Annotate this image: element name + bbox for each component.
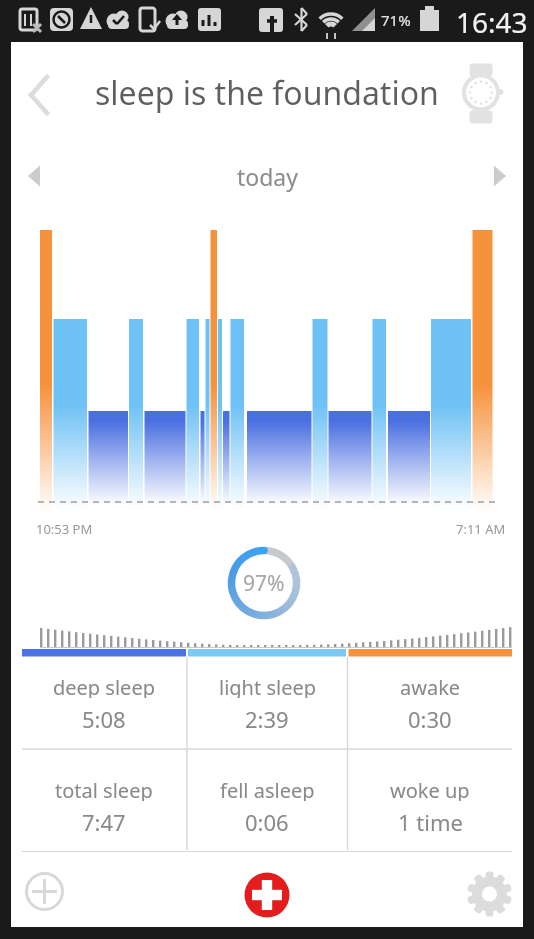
staticText: 0:30	[408, 704, 452, 730]
button[interactable]	[22, 869, 67, 914]
staticText: 7:47	[82, 807, 126, 833]
staticText: 97%	[243, 569, 285, 597]
button[interactable]	[20, 158, 52, 194]
button[interactable]	[23, 658, 185, 749]
staticText: 1 time	[398, 807, 463, 833]
button[interactable]: today	[0, 156, 534, 196]
staticText: 0:06	[245, 807, 289, 833]
staticText: sleep is the foundation	[95, 71, 439, 115]
staticText: 7:11 AM	[456, 520, 506, 538]
button[interactable]	[349, 658, 511, 749]
staticText: total sleep	[55, 777, 153, 801]
staticText: 5:08	[82, 704, 126, 730]
staticText: 16:43	[456, 3, 528, 37]
button[interactable]	[186, 749, 348, 850]
staticText: 71%	[381, 10, 411, 30]
staticText: today	[237, 161, 298, 192]
button[interactable]	[18, 68, 64, 120]
staticText: fell asleep	[220, 777, 315, 801]
staticText: light sleep	[219, 674, 316, 698]
button[interactable]	[456, 62, 510, 122]
staticText: 2:39	[245, 704, 289, 730]
staticText: woke up	[390, 777, 470, 801]
staticText: 10:53 PM	[36, 520, 93, 538]
button[interactable]	[349, 749, 511, 850]
staticText: deep sleep	[53, 674, 155, 698]
button[interactable]	[484, 158, 516, 194]
button[interactable]	[186, 658, 348, 749]
button[interactable]: sleep is the foundation	[0, 64, 534, 122]
button[interactable]	[244, 872, 290, 918]
staticText: awake	[400, 674, 461, 698]
button[interactable]	[467, 871, 512, 916]
button[interactable]	[23, 749, 185, 850]
